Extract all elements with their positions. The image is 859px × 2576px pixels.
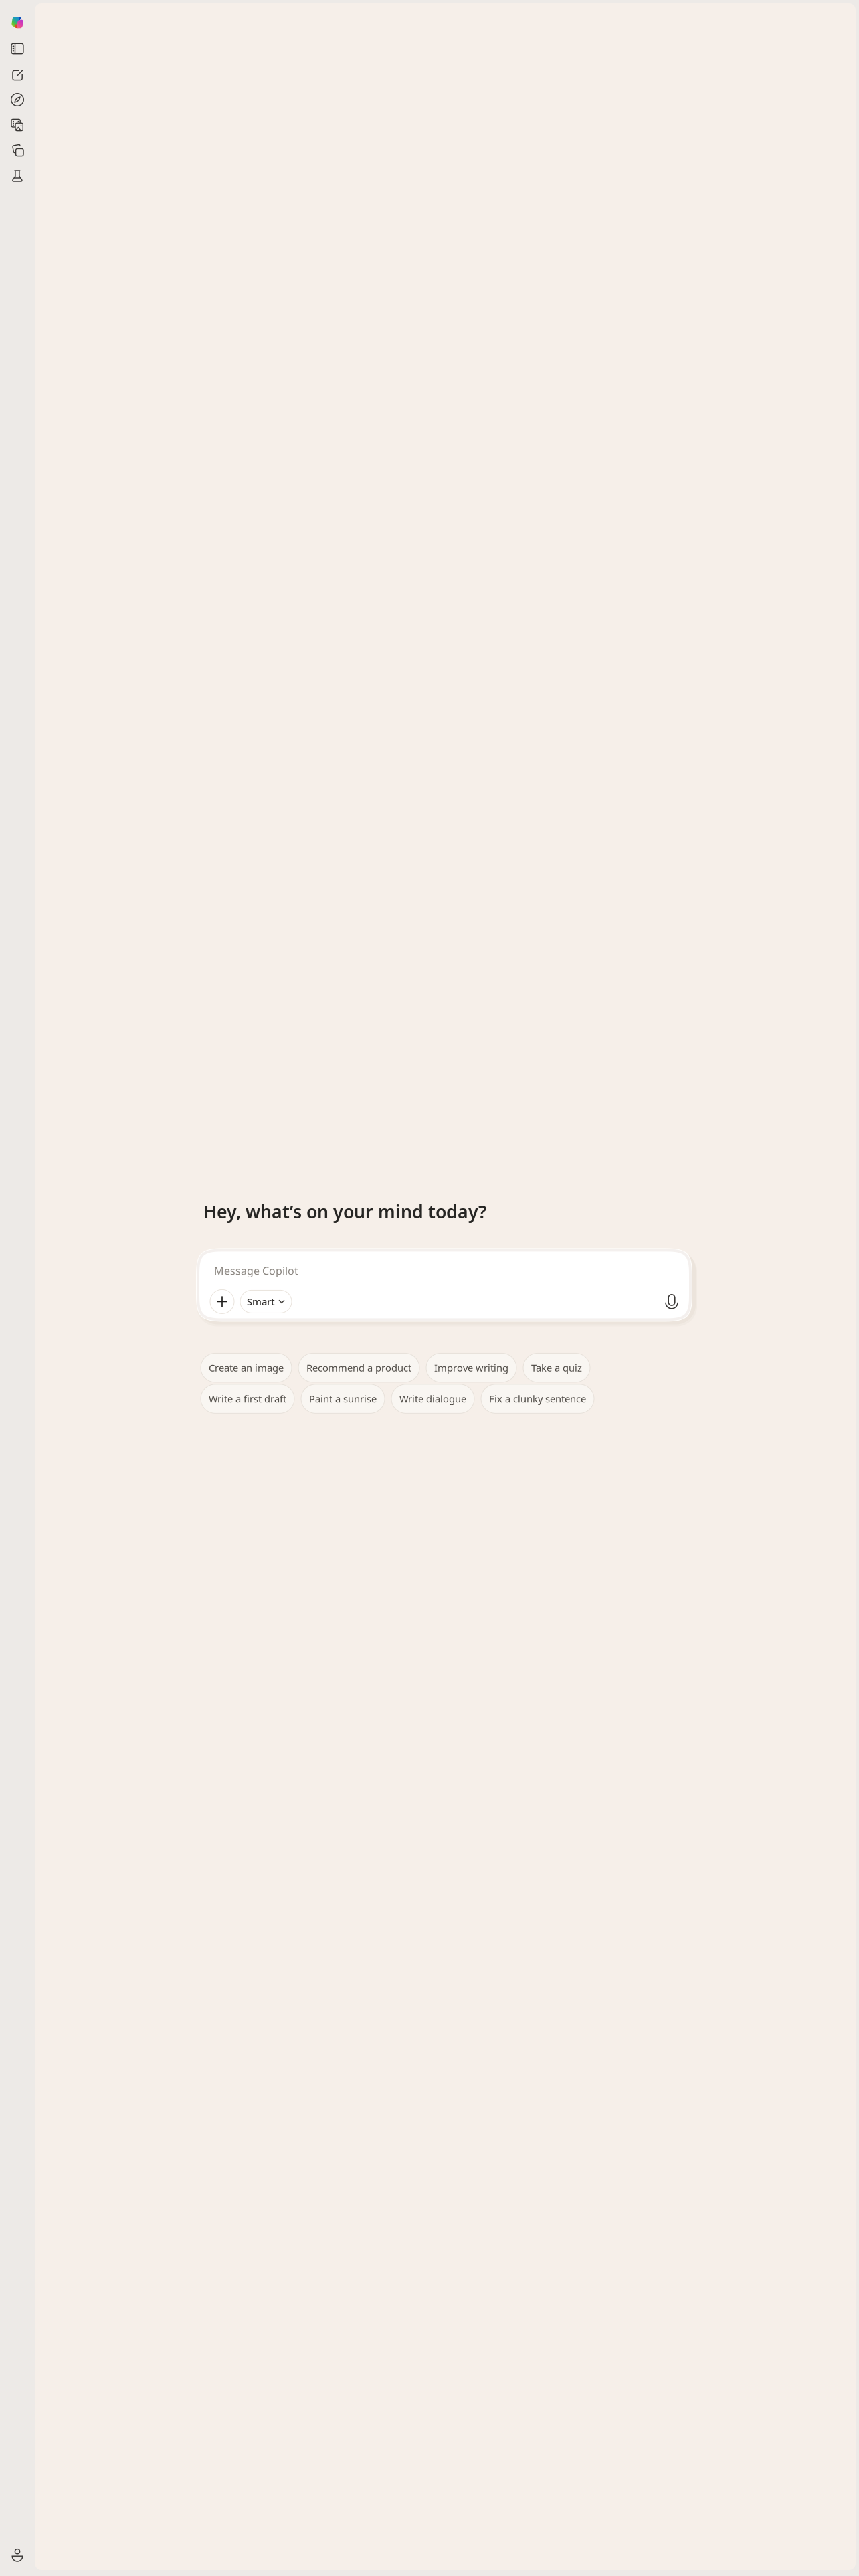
button[interactable]: Create an image [201, 1353, 292, 1382]
button[interactable]: Recommend a product [298, 1353, 419, 1382]
button[interactable]: Gallery [0, 112, 35, 138]
button[interactable]: Write a first draft [201, 1384, 294, 1413]
button[interactable]: Discover [0, 87, 35, 112]
button[interactable]: Write dialogue [391, 1384, 474, 1413]
button[interactable]: Smart [240, 1290, 292, 1313]
button[interactable]: Labs [0, 163, 35, 189]
button[interactable]: Take a quiz [523, 1353, 590, 1382]
staticText: Write a first draft [209, 1392, 286, 1405]
staticText: Create an image [209, 1361, 284, 1374]
button[interactable]: Account [0, 2542, 35, 2567]
staticText: Paint a sunrise [309, 1392, 377, 1405]
button[interactable]: Paint a sunrise [301, 1384, 385, 1413]
staticText: Message Copilot [214, 1264, 298, 1278]
button[interactable]: Improve writing [426, 1353, 516, 1382]
staticText: Smart [247, 1295, 275, 1308]
staticText: Recommend a product [306, 1361, 411, 1374]
button[interactable]: Add attachment [210, 1290, 234, 1314]
staticText: Take a quiz [531, 1361, 582, 1374]
button[interactable]: Pages [0, 138, 35, 163]
staticText: Hey, what’s on your mind today? [203, 1200, 486, 1223]
staticText: Write dialogue [399, 1392, 466, 1405]
staticText: Improve writing [434, 1361, 508, 1374]
button[interactable]: Dictate [662, 1290, 682, 1314]
button[interactable]: New chat [0, 62, 35, 87]
staticText: Fix a clunky sentence [489, 1392, 586, 1405]
button[interactable]: Toggle sidebar [0, 36, 35, 62]
button[interactable]: Fix a clunky sentence [481, 1384, 594, 1413]
